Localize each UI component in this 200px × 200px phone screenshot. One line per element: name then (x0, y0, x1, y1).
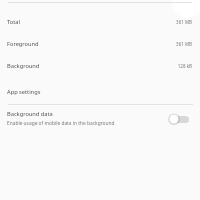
button[interactable]: Background (0, 55, 200, 77)
button[interactable]: Background data (0, 105, 200, 132)
button[interactable]: Total (0, 11, 200, 33)
staticText: Background (7, 62, 177, 70)
staticText: 361 MB (176, 41, 192, 47)
staticText: Total (7, 18, 176, 26)
staticText: Foreground (7, 40, 176, 48)
staticText: App settings (7, 88, 41, 96)
button[interactable]: App settings (0, 81, 200, 103)
button[interactable]: Toggle background data (167, 112, 189, 126)
staticText: Background data (7, 110, 53, 118)
button[interactable]: Foreground (0, 33, 200, 55)
staticText: 128 kB (177, 63, 192, 69)
staticText: 361 MB (176, 19, 192, 25)
staticText: Enable usage of mobile data in the backg… (7, 120, 115, 127)
